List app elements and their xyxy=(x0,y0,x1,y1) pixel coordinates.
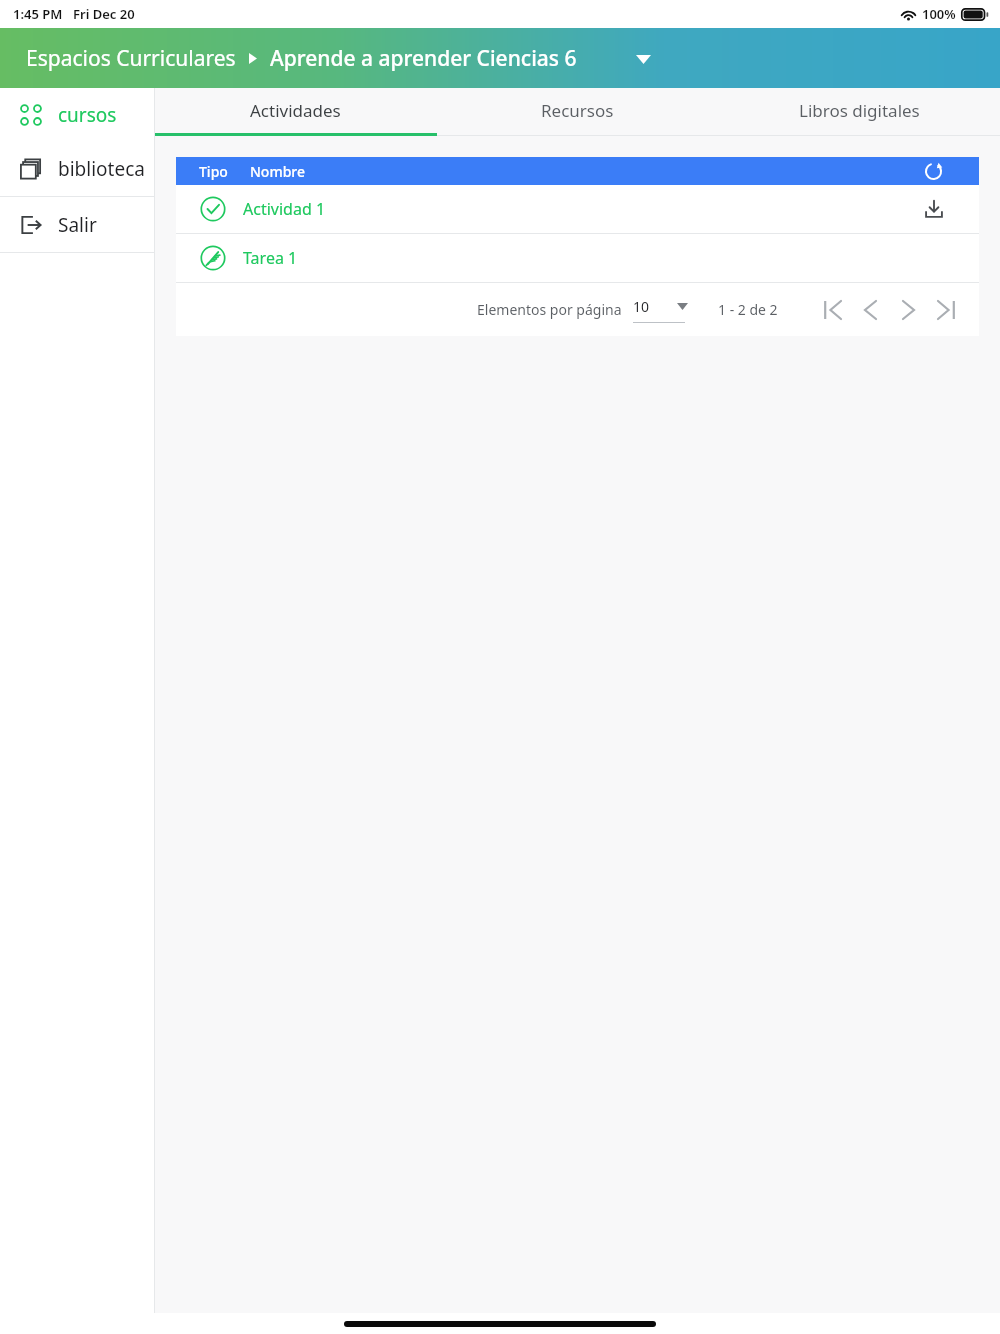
staticText: Libros digitales xyxy=(799,99,920,122)
button[interactable]: Página anterior xyxy=(856,296,884,324)
button[interactable]: Expandir menú xyxy=(629,45,657,73)
staticText: Salir xyxy=(58,212,97,238)
button[interactable]: Espacios Curriculares xyxy=(26,44,236,73)
staticText: Recursos xyxy=(541,99,614,122)
staticText: Aprende a aprender Ciencias 6 xyxy=(270,44,577,73)
staticText: Fri Dec 20 xyxy=(73,5,135,23)
button[interactable]: Descargar xyxy=(919,194,949,224)
staticText: cursos xyxy=(58,102,117,128)
staticText: 10 xyxy=(633,297,650,316)
button[interactable]: Actividades xyxy=(155,88,436,133)
button[interactable]: Página siguiente xyxy=(894,296,922,324)
button[interactable]: cursos xyxy=(0,88,154,141)
button[interactable]: Salir xyxy=(0,197,154,252)
staticText: 1:45 PM xyxy=(13,5,63,23)
staticText: 1 - 2 de 2 xyxy=(718,300,778,319)
staticText: Actividad 1 xyxy=(243,198,326,220)
button[interactable]: Última página xyxy=(932,296,960,324)
staticText: Tarea 1 xyxy=(243,247,298,269)
button[interactable]: Libros digitales xyxy=(718,88,1000,133)
staticText: 100% xyxy=(922,5,956,23)
staticText: Tipo xyxy=(199,162,228,181)
button[interactable]: Primera página xyxy=(818,296,846,324)
button[interactable]: 10 xyxy=(633,297,688,323)
staticText: Elementos por página xyxy=(477,300,622,319)
staticText: biblioteca xyxy=(58,156,145,182)
button[interactable]: Recursos xyxy=(436,88,718,133)
staticText: Actividades xyxy=(250,99,341,122)
button[interactable]: Tarea 1 xyxy=(176,234,979,282)
staticText: Nombre xyxy=(250,162,306,181)
button[interactable]: Actualizar xyxy=(921,159,945,183)
button[interactable]: Actividad 1 xyxy=(176,185,979,233)
button[interactable]: Aprende a aprender Ciencias 6 xyxy=(270,44,577,73)
staticText: Espacios Curriculares xyxy=(26,44,236,73)
button[interactable]: biblioteca xyxy=(0,141,154,196)
